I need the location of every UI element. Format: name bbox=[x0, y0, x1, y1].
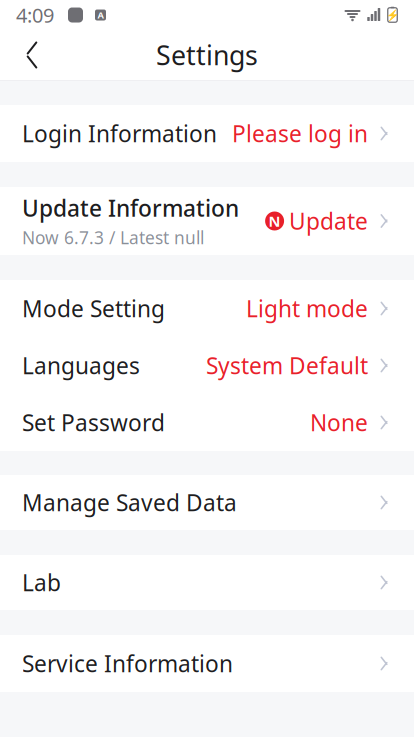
button[interactable]: Update Information bbox=[0, 187, 414, 255]
staticText: Please log in bbox=[232, 118, 368, 148]
staticText: Mode Setting bbox=[22, 293, 165, 323]
staticText: A bbox=[97, 9, 103, 21]
button[interactable]: Set Password bbox=[0, 394, 414, 451]
staticText: Update Information bbox=[22, 193, 239, 223]
button[interactable]: Manage Saved Data bbox=[0, 475, 414, 530]
staticText: Languages bbox=[22, 350, 140, 380]
staticText: 4:09 bbox=[16, 2, 54, 28]
staticText: ⚡ bbox=[386, 9, 399, 21]
staticText: Login Information bbox=[22, 118, 217, 148]
staticText: Set Password bbox=[22, 407, 165, 437]
button[interactable]: Back bbox=[8, 30, 56, 80]
staticText: N bbox=[269, 211, 281, 231]
button[interactable]: Lab bbox=[0, 555, 414, 610]
staticText: Light mode bbox=[246, 293, 368, 323]
staticText: System Default bbox=[206, 350, 368, 380]
button[interactable]: Login Information bbox=[0, 105, 414, 162]
staticText: Manage Saved Data bbox=[22, 487, 237, 517]
button[interactable]: Mode Setting bbox=[0, 280, 414, 337]
staticText: Update bbox=[289, 206, 368, 236]
staticText: Service Information bbox=[22, 648, 233, 678]
staticText: Lab bbox=[22, 567, 61, 597]
staticText: Now 6.7.3 / Latest null bbox=[22, 226, 204, 249]
staticText: Settings bbox=[156, 37, 258, 73]
button[interactable]: Service Information bbox=[0, 635, 414, 692]
staticText: None bbox=[310, 407, 368, 437]
button[interactable]: Languages bbox=[0, 337, 414, 394]
